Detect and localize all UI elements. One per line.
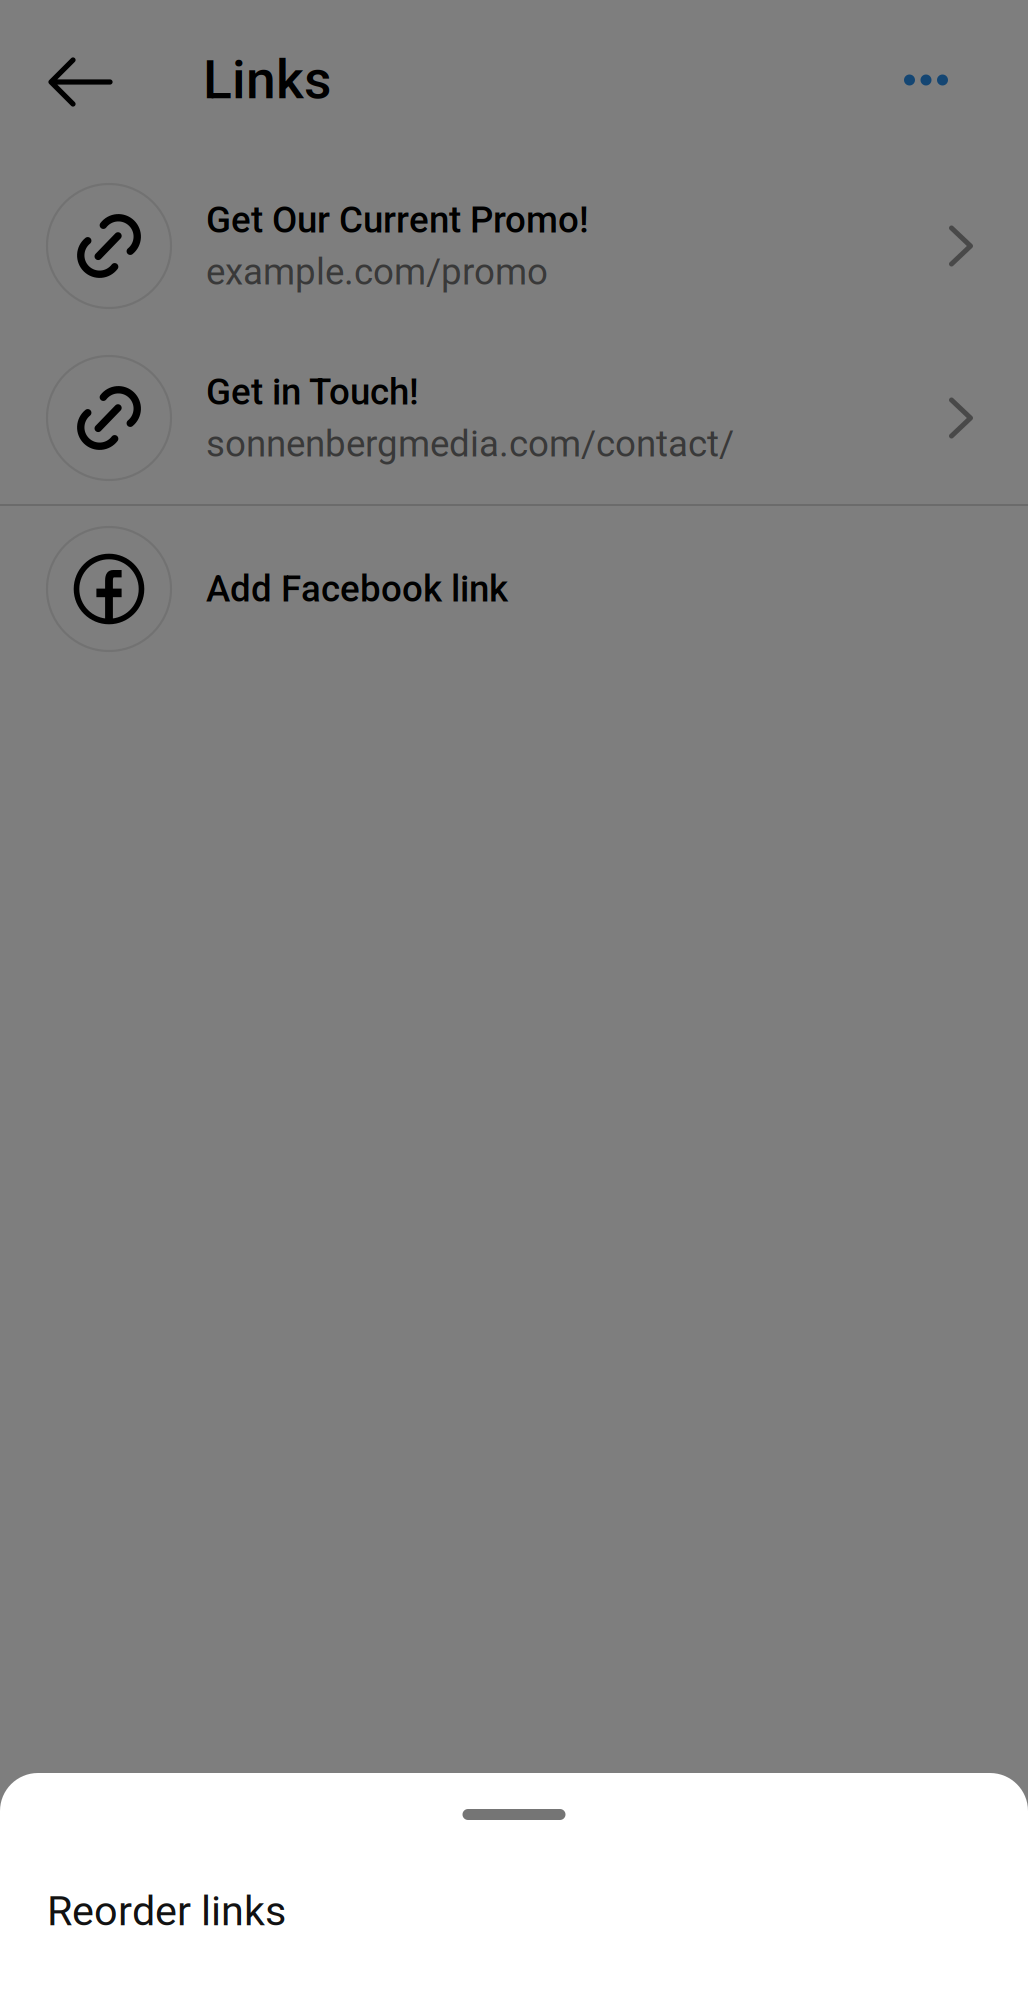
button[interactable]: More options	[870, 24, 982, 136]
staticText: Reorder links	[47, 1887, 286, 1935]
staticText: Get in Touch!	[206, 370, 419, 413]
button[interactable]: Back	[13, 24, 148, 136]
staticText: example.com/promo	[206, 250, 548, 293]
button[interactable]: Get Our Current Promo!	[0, 160, 1028, 332]
staticText: Add Facebook link	[206, 567, 508, 610]
staticText: sonnenbergmedia.com/contact/	[206, 422, 734, 465]
button[interactable]: Add Facebook link	[0, 506, 1028, 672]
staticText: Links	[203, 49, 331, 111]
staticText: Get Our Current Promo!	[206, 198, 589, 241]
button[interactable]: Get in Touch!	[0, 332, 1028, 504]
button[interactable]: Reorder links	[0, 1820, 1028, 1981]
